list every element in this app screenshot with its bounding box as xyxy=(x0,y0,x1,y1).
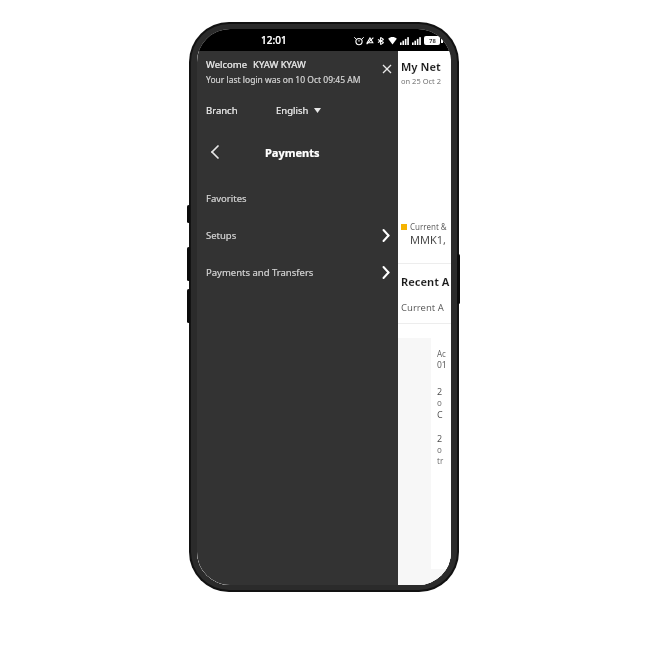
button[interactable]: Close xyxy=(376,58,398,80)
staticText: Ac xyxy=(437,348,446,359)
staticText: Current & xyxy=(410,221,447,232)
staticText: C xyxy=(437,408,443,420)
staticText: 12:01 xyxy=(261,33,287,47)
staticText: 2 xyxy=(437,385,443,397)
staticText: My Net W xyxy=(401,59,451,74)
button[interactable]: Setups xyxy=(197,217,398,254)
staticText: 2 xyxy=(437,432,443,444)
staticText: Recent A xyxy=(401,274,450,289)
staticText: 78 xyxy=(429,37,436,45)
staticText: Setups xyxy=(206,229,237,242)
staticText: MMK1, xyxy=(410,232,447,247)
staticText: English xyxy=(276,104,309,117)
button[interactable]: Favorites xyxy=(197,180,398,217)
staticText: Payments and Transfers xyxy=(206,266,314,279)
button[interactable]: Back xyxy=(202,140,226,164)
staticText: o xyxy=(437,397,442,408)
staticText: 01 xyxy=(437,359,447,371)
staticText: on 25 Oct 2 xyxy=(401,76,442,86)
staticText: tr xyxy=(437,455,444,466)
staticText: o xyxy=(437,444,442,455)
staticText: Welcome xyxy=(206,58,248,71)
button[interactable]: English xyxy=(276,104,321,117)
staticText: Your last login was on 10 Oct 09:45 AM xyxy=(206,74,361,86)
staticText: Current A xyxy=(401,301,444,314)
staticText: Payments xyxy=(265,145,320,160)
staticText: Favorites xyxy=(206,192,247,205)
button[interactable]: Payments and Transfers xyxy=(197,254,398,291)
staticText: Branch xyxy=(206,104,238,117)
staticText: KYAW KYAW xyxy=(253,58,306,71)
